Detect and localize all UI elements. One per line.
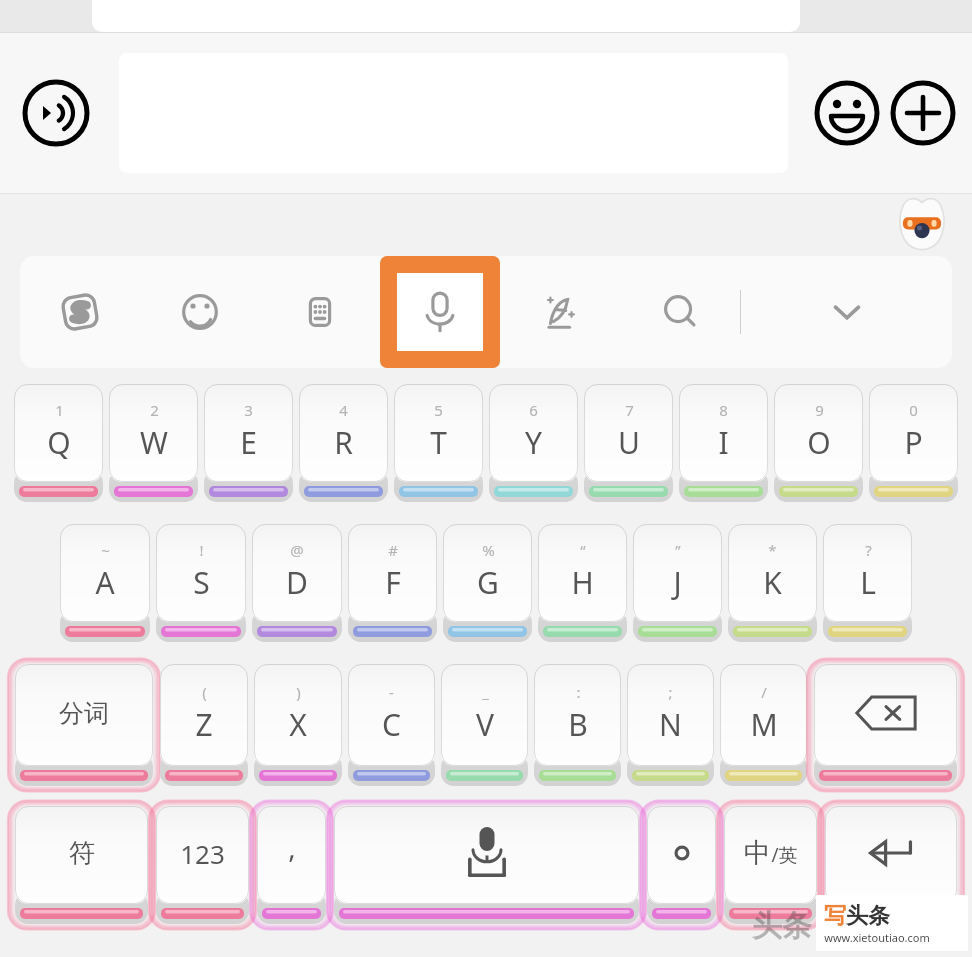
staticText: H (571, 562, 594, 603)
staticText: D (286, 562, 308, 603)
staticText: 2 (150, 400, 159, 420)
staticText: 头条 (752, 907, 812, 945)
staticText: www.xietoutiao.com (824, 930, 930, 945)
staticText: 5 (434, 400, 443, 420)
staticText: ” (675, 540, 681, 560)
staticText: 4 (339, 400, 348, 420)
button[interactable]: Emoji (814, 80, 880, 146)
staticText: ! (199, 540, 204, 560)
button[interactable]: Search (620, 256, 740, 368)
staticText: 0 (909, 400, 918, 420)
staticText: K (763, 562, 782, 603)
button[interactable]: 0 (869, 384, 958, 502)
button[interactable]: ! (156, 524, 246, 642)
staticText: ; (668, 682, 673, 702)
button[interactable]: _ (441, 664, 528, 786)
staticText: “ (580, 540, 586, 560)
button[interactable]: 中 (724, 806, 817, 924)
button[interactable]: More (890, 80, 956, 146)
button[interactable]: 7 (584, 384, 673, 502)
button[interactable]: 4 (299, 384, 388, 502)
staticText: 7 (625, 400, 634, 420)
staticText: - (389, 682, 394, 702)
staticText: O (807, 422, 831, 463)
staticText: : (576, 682, 581, 702)
staticText: B (568, 704, 588, 745)
staticText: 8 (719, 400, 728, 420)
staticText: M (750, 704, 778, 745)
button[interactable]: 1 (14, 384, 103, 502)
button[interactable]: ” (633, 524, 722, 642)
button[interactable]: 符 (15, 806, 148, 924)
button[interactable]: , (257, 806, 326, 924)
staticText: _ (482, 682, 489, 702)
staticText: P (904, 422, 923, 463)
button[interactable]: Emoji (140, 256, 260, 368)
button[interactable]: 5 (394, 384, 483, 502)
button[interactable]: / (720, 664, 807, 786)
button[interactable]: ~ (60, 524, 150, 642)
button[interactable]: 123 (156, 806, 249, 924)
staticText: C (382, 704, 401, 745)
button[interactable]: - (348, 664, 435, 786)
staticText: 中 (744, 836, 771, 870)
staticText: 123 (180, 836, 225, 871)
button[interactable]: 8 (679, 384, 768, 502)
staticText: ~ (101, 540, 110, 560)
button[interactable]: Space (334, 806, 639, 924)
button[interactable]: Handwriting (500, 256, 620, 368)
staticText: 1 (55, 400, 64, 420)
staticText: 写 (824, 902, 846, 930)
staticText: 9 (815, 400, 824, 420)
staticText: Y (525, 422, 542, 463)
staticText: / (761, 682, 767, 702)
button[interactable]: @ (252, 524, 342, 642)
button[interactable] (647, 806, 716, 924)
button[interactable]: 2 (109, 384, 198, 502)
staticText: U (618, 422, 640, 463)
other: Delete (814, 664, 957, 762)
staticText: , (288, 828, 296, 866)
button[interactable]: Delete (814, 664, 957, 786)
button[interactable]: Enter (825, 806, 957, 924)
button[interactable]: 9 (774, 384, 863, 502)
staticText: % (482, 540, 495, 560)
staticText: ) (296, 682, 301, 702)
button[interactable]: Keyboard layout (260, 256, 380, 368)
button[interactable]: 3 (204, 384, 293, 502)
button[interactable]: ) (254, 664, 342, 786)
button[interactable]: Hide keyboard (741, 256, 952, 368)
staticText: N (659, 704, 682, 745)
staticText: R (334, 422, 353, 463)
button[interactable]: ? (823, 524, 912, 642)
staticText: X (289, 704, 307, 745)
staticText: Q (47, 422, 71, 463)
staticText: T (430, 422, 447, 463)
button[interactable]: Voice message (22, 79, 90, 147)
button[interactable]: # (348, 524, 437, 642)
staticText: F (385, 562, 401, 603)
staticText: * (768, 540, 777, 560)
button[interactable]: : (534, 664, 621, 786)
staticText: 3 (244, 400, 253, 420)
staticText: L (860, 562, 876, 603)
button[interactable]: “ (538, 524, 627, 642)
button[interactable]: % (443, 524, 532, 642)
other: Enter (825, 806, 957, 900)
staticText: G (477, 562, 499, 603)
staticText: J (673, 562, 682, 603)
staticText: ? (865, 540, 872, 560)
staticText: S (193, 562, 210, 603)
staticText: @ (290, 540, 304, 560)
button[interactable]: ; (627, 664, 714, 786)
button[interactable]: Sogou input settings (20, 256, 140, 368)
staticText: V (476, 704, 494, 745)
button[interactable]: * (728, 524, 817, 642)
button[interactable]: Assistant mascot (894, 197, 950, 253)
button[interactable]: Voice input (397, 273, 483, 351)
staticText: /英 (771, 842, 798, 868)
button[interactable]: 分词 (15, 664, 153, 786)
button[interactable]: 6 (489, 384, 578, 502)
button[interactable]: ( (160, 664, 248, 786)
